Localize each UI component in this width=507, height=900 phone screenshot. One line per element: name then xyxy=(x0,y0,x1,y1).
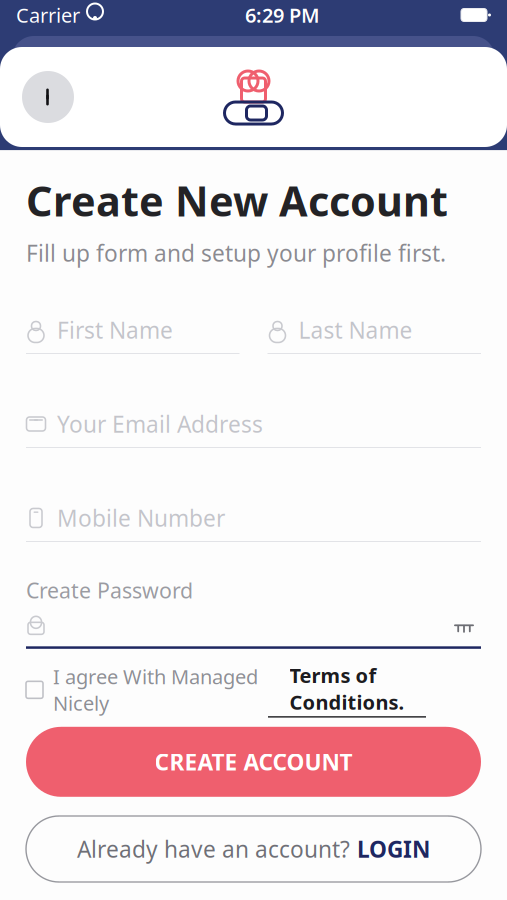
staticText: Carrier xyxy=(16,2,80,28)
staticText: First Name xyxy=(57,315,173,345)
button[interactable]: I agree With Managed Nicely xyxy=(26,675,481,705)
staticText: CREATE ACCOUNT xyxy=(154,747,352,777)
staticText: Last Name xyxy=(298,315,412,345)
button[interactable]: Already have an account? xyxy=(26,816,481,882)
staticText: Already have an account? xyxy=(77,834,350,864)
button[interactable]: CREATE ACCOUNT xyxy=(26,727,481,797)
staticText: I agree With Managed Nicely xyxy=(53,663,258,716)
staticText: LOGIN xyxy=(357,834,430,864)
button[interactable]: Back xyxy=(22,71,74,123)
staticText: Terms of Conditions. xyxy=(289,662,404,715)
staticText: Your Email Address xyxy=(57,409,263,439)
staticText: Mobile Number xyxy=(57,503,225,533)
staticText: Fill up form and setup your profile firs… xyxy=(26,238,446,268)
staticText: 6:29 PM xyxy=(245,2,320,28)
staticText: Create Password xyxy=(26,576,193,604)
staticText: Create New Account xyxy=(26,173,448,228)
button[interactable]: Show password xyxy=(447,612,481,638)
